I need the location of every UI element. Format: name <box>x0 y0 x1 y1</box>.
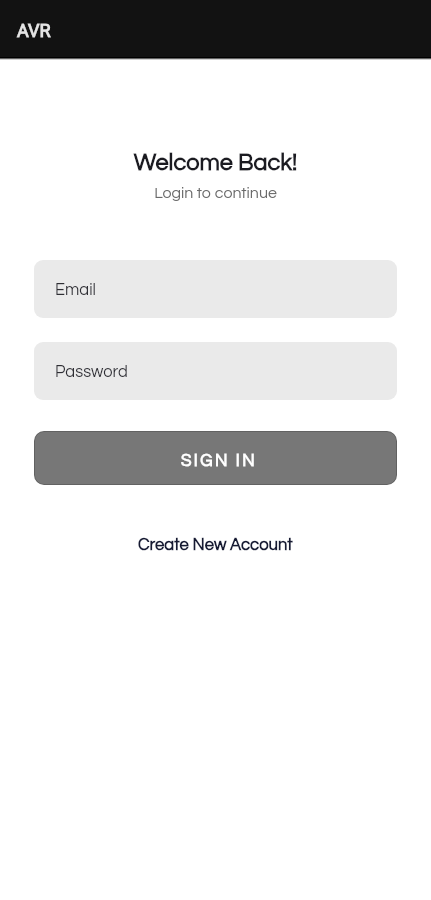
staticText: Welcome Back! <box>0 151 431 175</box>
staticText: AVR <box>17 20 51 41</box>
staticText: Create New Account <box>138 536 293 553</box>
staticText: Login to continue <box>0 185 431 201</box>
button[interactable]: Email <box>34 260 397 318</box>
staticText: Password <box>55 363 128 380</box>
staticText: SIGN IN <box>181 452 258 470</box>
staticText: Email <box>55 281 96 298</box>
button[interactable]: Create New Account <box>128 531 303 558</box>
button[interactable]: Password <box>34 342 397 400</box>
button[interactable]: SIGN IN <box>34 431 397 485</box>
